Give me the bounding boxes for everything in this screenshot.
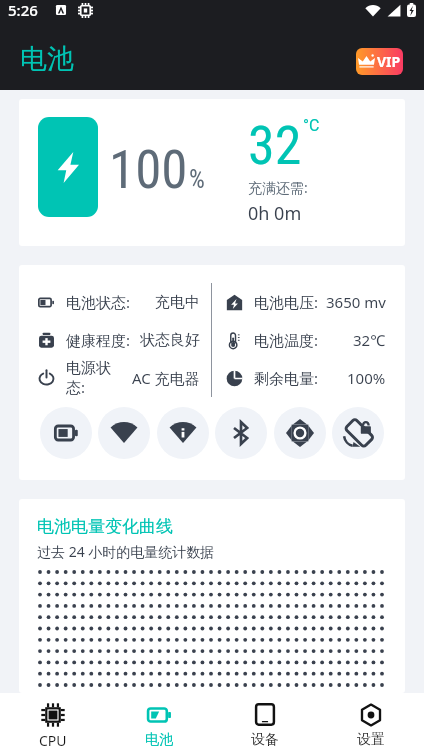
staticText: 电池状态: [66,292,131,312]
button[interactable]: Bluetooth [215,407,267,459]
button[interactable]: Wi-Fi [98,407,150,459]
staticText: 过去 24 小时的电量统计数据 [37,542,215,561]
staticText: 健康程度: [66,330,131,350]
staticText: 充满还需: [248,178,308,197]
staticText: 5:26 [8,0,38,20]
staticText: 电池 [20,42,74,76]
button[interactable]: VIP [356,48,403,75]
staticText: AC 充电器 [132,368,200,388]
staticText: 电池电压: [254,292,319,312]
staticText: °C [303,116,320,135]
staticText: 充电中 [155,293,200,312]
staticText: 32 [248,114,302,177]
staticText: 设备 [251,731,279,746]
button[interactable]: Battery saver [40,407,92,459]
staticText: CPU [39,731,67,746]
staticText: VIP [377,52,401,71]
button[interactable]: Brightness [274,407,326,459]
staticText: 32℃ [353,330,386,350]
button[interactable]: Rotation lock [332,407,384,459]
staticText: 剩余电量: [254,368,319,388]
button[interactable]: 设置 [318,693,424,755]
staticText: % [189,165,205,194]
staticText: 3650 mv [326,292,386,312]
staticText: 100 [109,139,188,201]
staticText: 100% [347,368,386,388]
button[interactable]: 电池 [106,693,212,755]
staticText: 0h 0m [248,201,302,226]
staticText: 电池 [145,731,173,746]
button[interactable]: 设备 [212,693,318,755]
button[interactable]: Wi-Fi info [157,407,209,459]
staticText: 设置 [357,731,385,746]
staticText: 电源状 态: [66,359,111,397]
staticText: 状态良好 [140,331,200,350]
staticText: 电池电量变化曲线 [37,516,173,537]
staticText: 电池温度: [254,330,319,350]
button[interactable]: CPU [0,693,106,755]
